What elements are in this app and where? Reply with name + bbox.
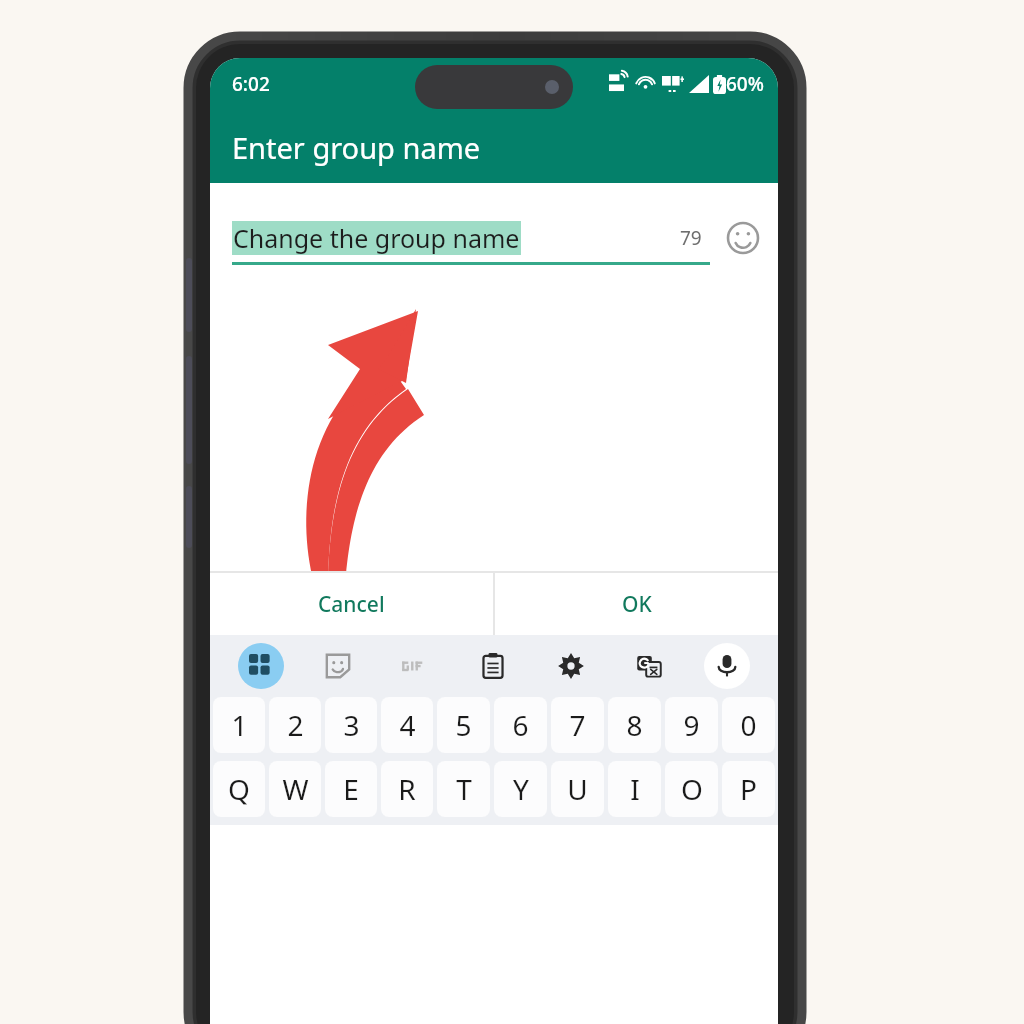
staticText: Y [513, 770, 529, 808]
button[interactable]: 8 [608, 697, 661, 753]
staticText: R [398, 770, 416, 808]
staticText: 60% [726, 71, 764, 97]
button[interactable]: Sticker [315, 643, 361, 689]
staticText: W [282, 770, 309, 808]
button[interactable]: 1 [213, 697, 265, 753]
staticText: E [343, 770, 359, 808]
staticText: 7 [569, 706, 586, 744]
button[interactable]: P [722, 761, 775, 817]
staticText: U [567, 770, 588, 808]
button[interactable]: 4 [381, 697, 433, 753]
staticText: 2 [287, 706, 304, 744]
staticText: 0 [740, 706, 757, 744]
staticText: T [456, 770, 472, 808]
button[interactable]: GIF [392, 643, 438, 689]
staticText: Q [228, 770, 250, 808]
staticText: 1 [231, 706, 248, 744]
staticText: 6 [512, 706, 529, 744]
button[interactable]: Voice input [704, 643, 750, 689]
button[interactable]: E [325, 761, 377, 817]
button[interactable]: R [381, 761, 433, 817]
staticText: O [681, 770, 703, 808]
staticText: 5 [455, 706, 472, 744]
staticText: Enter group name [232, 128, 481, 167]
button[interactable]: Clipboard [470, 643, 516, 689]
staticText: P [740, 770, 757, 808]
staticText: 79 [680, 225, 702, 251]
button[interactable]: 9 [665, 697, 718, 753]
button[interactable]: U [551, 761, 604, 817]
button[interactable]: 3 [325, 697, 377, 753]
staticText: 9 [683, 706, 700, 744]
button[interactable]: I [608, 761, 661, 817]
button[interactable]: Apps [238, 643, 284, 689]
staticText: I [630, 770, 640, 808]
button[interactable]: 6 [494, 697, 547, 753]
button[interactable]: Cancel [210, 573, 493, 635]
button[interactable]: T [437, 761, 490, 817]
staticText: OK [622, 590, 652, 619]
button[interactable]: W [269, 761, 321, 817]
button[interactable]: 0 [722, 697, 775, 753]
button[interactable]: Y [494, 761, 547, 817]
button[interactable]: 2 [269, 697, 321, 753]
button[interactable]: 7 [551, 697, 604, 753]
staticText: 4 [399, 706, 416, 744]
staticText: Cancel [318, 590, 385, 619]
staticText: 3 [343, 706, 360, 744]
staticText: 8 [626, 706, 643, 744]
button[interactable]: Q [213, 761, 265, 817]
staticText: 6:02 [232, 71, 270, 97]
button[interactable]: O [665, 761, 718, 817]
staticText: Change the group name [233, 221, 520, 255]
button[interactable]: Emoji [726, 221, 760, 255]
button[interactable]: OK [495, 573, 778, 635]
button[interactable]: Settings [548, 643, 594, 689]
button[interactable]: Change the group name [232, 221, 680, 255]
button[interactable]: 5 [437, 697, 490, 753]
button[interactable]: Translate [626, 643, 672, 689]
